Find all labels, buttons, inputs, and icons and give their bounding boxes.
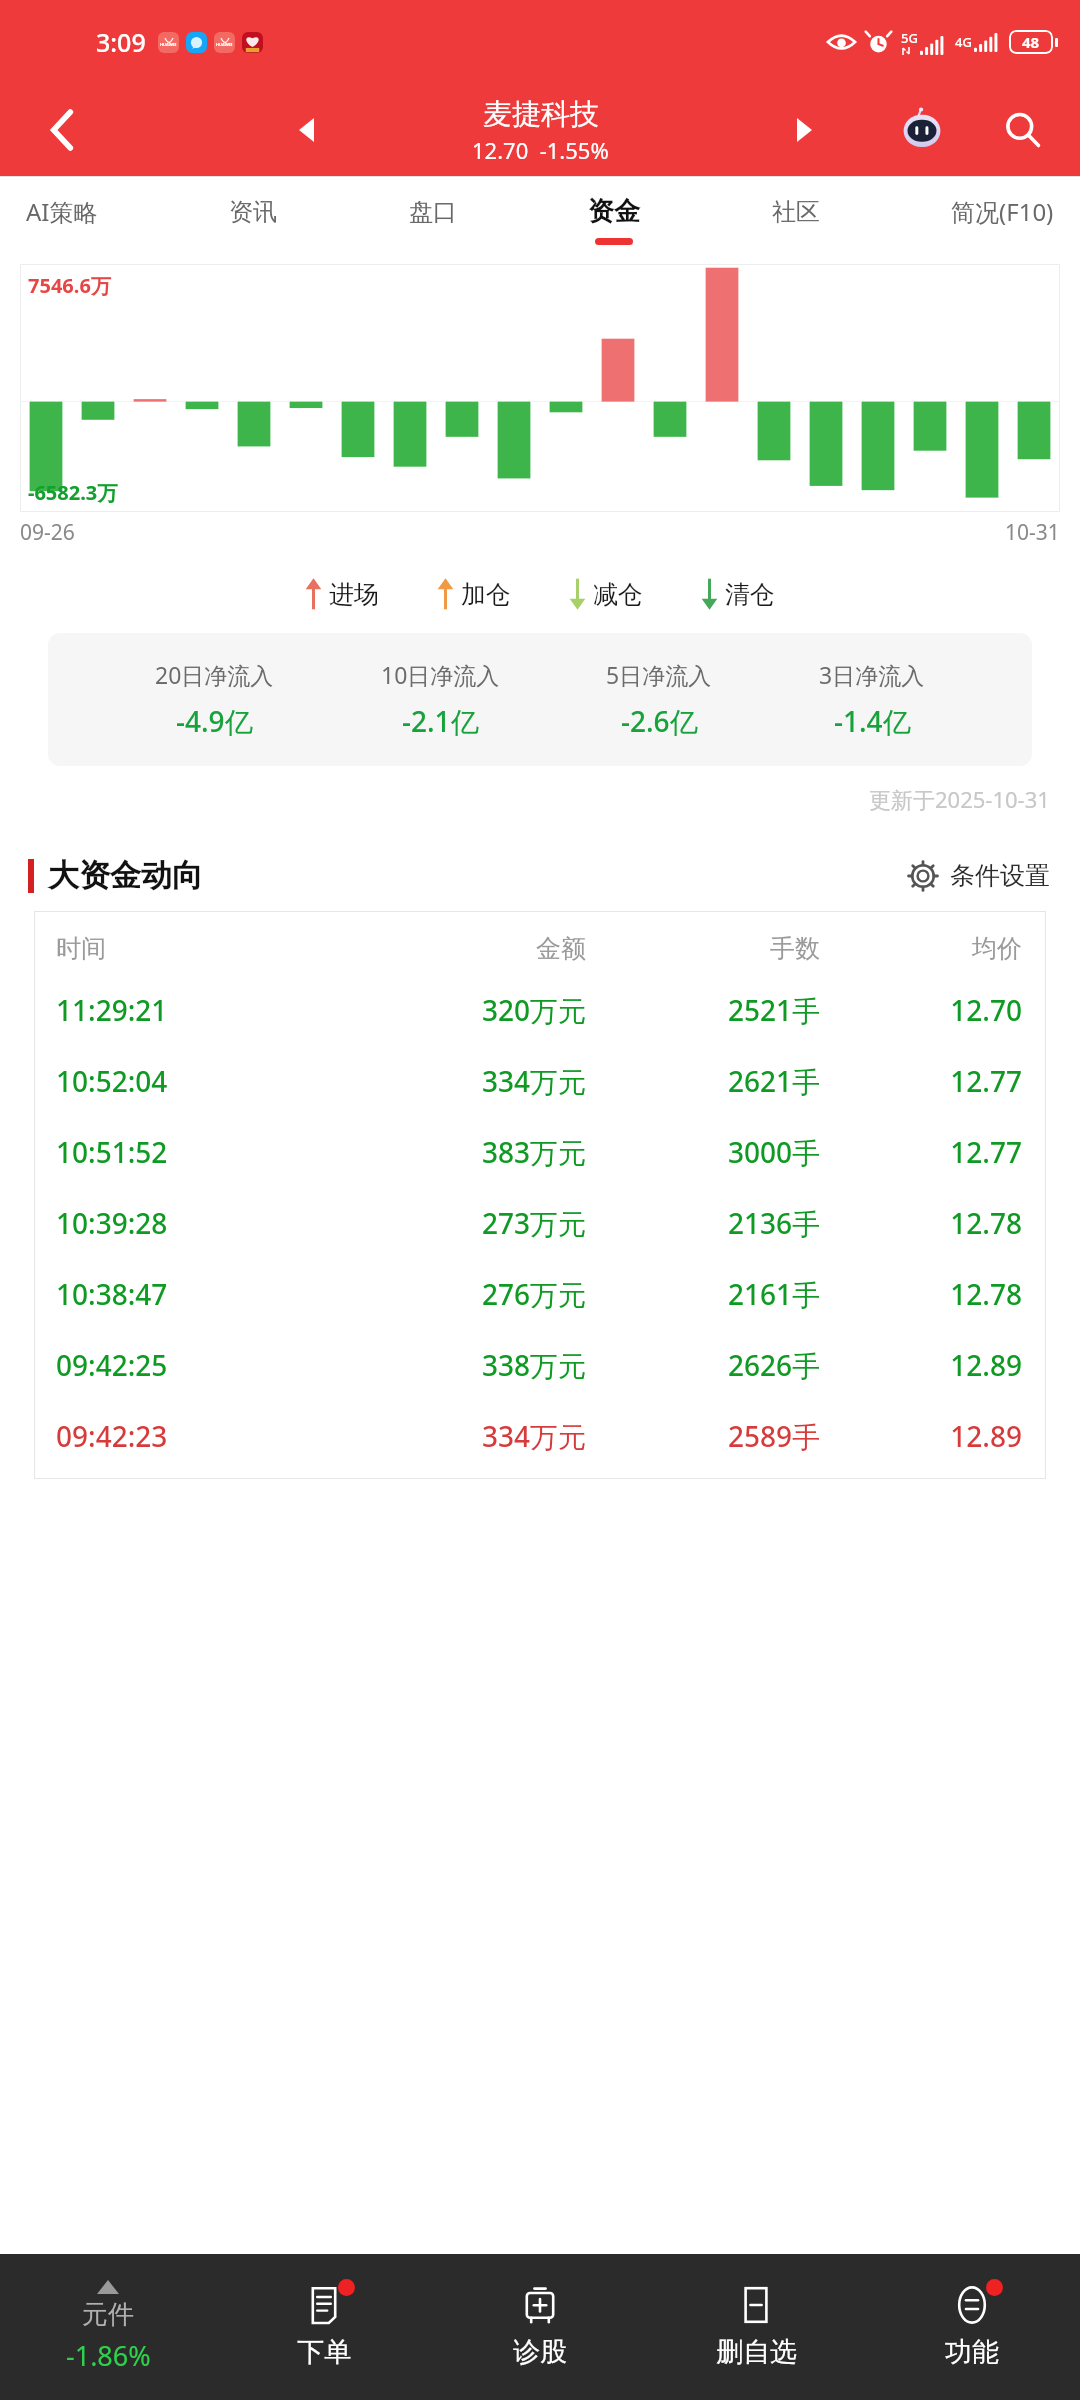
staticText: 社区 <box>772 197 820 227</box>
staticText: 2626手 <box>586 1346 820 1384</box>
staticText: 资金 <box>588 195 640 228</box>
staticText: 273万元 <box>340 1204 586 1242</box>
staticText: 12.70 <box>820 991 1022 1029</box>
button[interactable]: Back <box>34 102 90 158</box>
staticText: 4G <box>955 33 972 51</box>
button[interactable]: Search <box>994 101 1052 159</box>
staticText: 12.78 <box>820 1204 1022 1242</box>
staticText: 12.89 <box>820 1417 1022 1455</box>
staticText: AI策略 <box>26 195 98 228</box>
staticText: 麦捷科技 <box>483 96 599 133</box>
staticText: 12.89 <box>820 1346 1022 1384</box>
staticText: 10:51:52 <box>56 1133 340 1171</box>
staticText: 20日净流入 <box>155 659 274 690</box>
staticText: 减仓 <box>593 579 643 610</box>
staticText: 12.70 -1.55% <box>472 135 609 165</box>
staticText: HUAWEI <box>160 42 177 47</box>
staticText: 删自选 <box>716 2335 797 2369</box>
staticText: 12.77 <box>820 1133 1022 1171</box>
staticText: -1.4亿 <box>834 702 911 740</box>
staticText: 2589手 <box>586 1417 820 1455</box>
button[interactable]: 元件 <box>0 2280 216 2374</box>
button[interactable]: 09:42:25 <box>34 1329 1046 1400</box>
staticText: 09-26 <box>20 518 75 547</box>
staticText: 元件 <box>82 2298 134 2331</box>
button[interactable]: 功能 <box>864 2285 1080 2369</box>
staticText: 10:39:28 <box>56 1204 340 1242</box>
staticText: 12.77 <box>820 1062 1022 1100</box>
staticText: 下单 <box>297 2335 351 2369</box>
staticText: 10:52:04 <box>56 1062 340 1100</box>
button[interactable]: 盘口 <box>409 176 457 264</box>
button[interactable]: 社区 <box>772 176 820 264</box>
staticText: 7546.6万 <box>28 272 111 299</box>
button[interactable]: 10:52:04 <box>34 1045 1046 1116</box>
staticText: 48 <box>1022 32 1040 52</box>
staticText: 10:38:47 <box>56 1275 340 1313</box>
staticText: 2136手 <box>586 1204 820 1242</box>
button[interactable]: 资讯 <box>229 176 277 264</box>
button[interactable]: 资金 <box>588 176 640 264</box>
staticText: 10日净流入 <box>381 659 500 690</box>
button[interactable]: 10:38:47 <box>34 1258 1046 1329</box>
staticText: 5日净流入 <box>606 659 712 690</box>
staticText: 334万元 <box>340 1417 586 1455</box>
staticText: 383万元 <box>340 1133 586 1171</box>
button[interactable]: Next stock <box>776 102 832 158</box>
staticText: 334万元 <box>340 1062 586 1100</box>
staticText: 时间 <box>56 933 340 964</box>
staticText: 2621手 <box>586 1062 820 1100</box>
staticText: 清仓 <box>725 579 775 610</box>
button[interactable]: 简况(F10) <box>951 176 1054 264</box>
staticText: -1.86% <box>66 2337 151 2374</box>
button[interactable]: AI assistant <box>894 102 950 158</box>
staticText: 5G <box>901 29 918 47</box>
button[interactable]: 删自选 <box>648 2285 864 2369</box>
button[interactable]: 10:39:28 <box>34 1187 1046 1258</box>
staticText: 320万元 <box>340 991 586 1029</box>
staticText: 09:42:25 <box>56 1346 340 1384</box>
staticText: 诊股 <box>513 2335 567 2369</box>
staticText: 09:42:23 <box>56 1417 340 1455</box>
button[interactable]: 诊股 <box>432 2285 648 2369</box>
staticText: -2.6亿 <box>621 702 698 740</box>
staticText: 10-31 <box>1005 518 1060 547</box>
staticText: 2521手 <box>586 991 820 1029</box>
staticText: 3:09 <box>96 25 146 59</box>
staticText: 大资金动向 <box>48 856 203 895</box>
button[interactable]: Previous stock <box>278 102 334 158</box>
staticText: -6582.3万 <box>28 479 118 506</box>
staticText: 功能 <box>945 2335 999 2369</box>
staticText: 11:29:21 <box>56 991 340 1029</box>
staticText: HUAWEI <box>216 42 233 47</box>
staticText: 3000手 <box>586 1133 820 1171</box>
staticText: 3日净流入 <box>819 659 925 690</box>
staticText: 简况(F10) <box>951 195 1054 228</box>
staticText: 手数 <box>586 933 820 964</box>
staticText: 进场 <box>329 579 379 610</box>
staticText: 12.78 <box>820 1275 1022 1313</box>
staticText: 338万元 <box>340 1346 586 1384</box>
button[interactable]: 条件设置 <box>908 860 1050 891</box>
staticText: -2.1亿 <box>402 702 479 740</box>
staticText: 金额 <box>340 933 586 964</box>
staticText: -4.9亿 <box>176 702 253 740</box>
button[interactable]: 09:42:23 <box>34 1400 1046 1471</box>
button[interactable]: AI策略 <box>26 176 98 264</box>
staticText: 资讯 <box>229 197 277 227</box>
button[interactable]: 下单 <box>216 2285 432 2369</box>
staticText: 条件设置 <box>950 860 1050 891</box>
staticText: 更新于2025-10-31 <box>869 784 1050 814</box>
button[interactable]: 10:51:52 <box>34 1116 1046 1187</box>
staticText: 加仓 <box>461 579 511 610</box>
staticText: 276万元 <box>340 1275 586 1313</box>
staticText: 盘口 <box>409 197 457 227</box>
staticText: 2161手 <box>586 1275 820 1313</box>
staticText: 均价 <box>820 933 1022 964</box>
button[interactable]: 11:29:21 <box>34 974 1046 1045</box>
